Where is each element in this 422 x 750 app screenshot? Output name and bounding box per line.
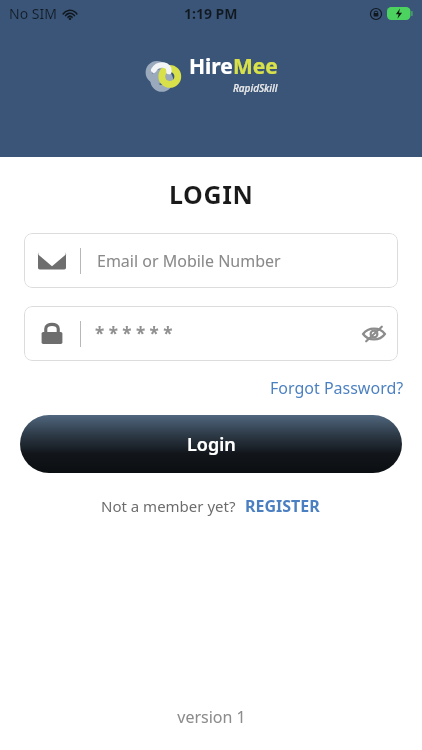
staticText: Forgot Password? xyxy=(270,377,404,399)
staticText: 1:19 PM xyxy=(184,4,238,23)
staticText: Login xyxy=(187,432,236,457)
staticText: Mee xyxy=(233,52,278,81)
staticText: version 1 xyxy=(177,706,246,728)
staticText: Not a member yet? xyxy=(101,496,236,516)
staticText: Hire xyxy=(189,52,233,81)
button[interactable]: Email or Mobile Number xyxy=(24,233,398,288)
staticText: LOGIN xyxy=(169,177,254,211)
button[interactable]: Show password xyxy=(350,310,398,358)
button[interactable]: Login xyxy=(20,415,402,473)
button[interactable]: * * * * * * xyxy=(24,306,398,361)
staticText: RapidSkill xyxy=(233,81,278,95)
button[interactable]: Forgot Password? xyxy=(252,373,422,403)
staticText: No SIM xyxy=(9,4,57,23)
staticText: * * * * * * xyxy=(95,322,173,345)
staticText: Email or Mobile Number xyxy=(97,250,281,272)
button[interactable]: REGISTER xyxy=(243,491,322,521)
staticText: REGISTER xyxy=(245,495,320,517)
